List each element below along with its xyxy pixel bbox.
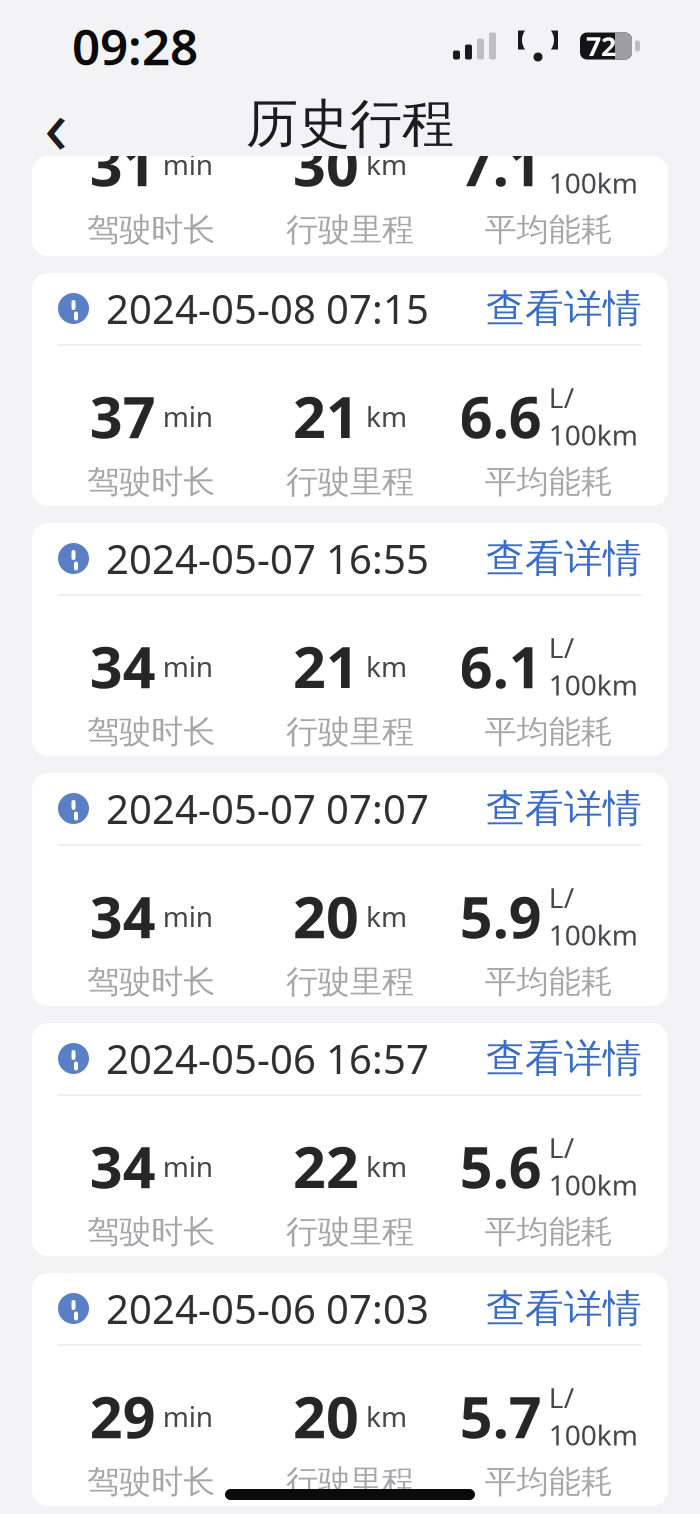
staticText: 行驶里程: [286, 962, 414, 1001]
staticText: min: [163, 897, 213, 935]
staticText: L/100km: [549, 1379, 638, 1453]
staticText: 34: [90, 878, 156, 954]
staticText: 30: [293, 126, 359, 202]
staticText: 2024-05-06 16:57: [106, 1032, 429, 1085]
staticText: 平均能耗: [485, 712, 613, 751]
staticText: 行驶里程: [286, 462, 414, 501]
staticText: L/100km: [549, 379, 638, 453]
staticText: 34: [90, 1128, 156, 1204]
staticText: 2024-05-07 07:07: [106, 782, 429, 835]
staticText: 6.6: [460, 378, 542, 454]
staticText: km: [366, 397, 407, 435]
staticText: 行驶里程: [286, 712, 414, 751]
staticText: 20: [293, 1378, 359, 1454]
staticText: min: [163, 1397, 213, 1435]
staticText: 查看详情: [486, 1035, 642, 1082]
button[interactable]: 2024-05-07 07:07: [0, 773, 700, 1006]
staticText: 72: [586, 28, 616, 64]
staticText: 29: [90, 1378, 156, 1454]
staticText: 2024-05-08 07:15: [106, 282, 429, 335]
staticText: 驾驶时长: [87, 210, 215, 249]
staticText: 5.7: [460, 1378, 542, 1454]
staticText: 2024-05-06 07:03: [106, 1282, 429, 1335]
staticText: 驾驶时长: [87, 462, 215, 501]
staticText: L/100km: [549, 127, 638, 201]
staticText: 平均能耗: [485, 1212, 613, 1251]
staticText: km: [366, 647, 407, 685]
staticText: km: [366, 1397, 407, 1435]
staticText: 37: [90, 378, 156, 454]
staticText: 行驶里程: [286, 1212, 414, 1251]
staticText: 20: [293, 878, 359, 954]
staticText: ‹: [44, 73, 68, 175]
staticText: 09:28: [72, 13, 198, 79]
staticText: 平均能耗: [485, 962, 613, 1001]
button[interactable]: 2024-05-06 07:03: [0, 1273, 700, 1506]
staticText: 驾驶时长: [87, 962, 215, 1001]
staticText: 22: [293, 1128, 359, 1204]
staticText: min: [163, 647, 213, 685]
staticText: min: [163, 145, 213, 183]
staticText: 历史行程: [246, 92, 454, 156]
staticText: km: [366, 897, 407, 935]
staticText: 查看详情: [486, 535, 642, 582]
staticText: 5.9: [460, 878, 542, 954]
staticText: min: [163, 1147, 213, 1185]
button[interactable]: 2024-05-08 07:15: [0, 273, 700, 506]
staticText: 5.6: [460, 1128, 542, 1204]
staticText: 驾驶时长: [87, 1212, 215, 1251]
staticText: 查看详情: [486, 285, 642, 332]
staticText: 平均能耗: [485, 462, 613, 501]
staticText: 行驶里程: [286, 1462, 414, 1501]
staticText: 平均能耗: [485, 210, 613, 249]
button[interactable]: Back: [14, 92, 98, 156]
staticText: min: [163, 397, 213, 435]
staticText: 查看详情: [486, 1285, 642, 1332]
staticText: L/100km: [549, 1129, 638, 1203]
staticText: L/100km: [549, 629, 638, 703]
button[interactable]: 2024-05-07 16:55: [0, 523, 700, 756]
staticText: 查看详情: [486, 785, 642, 832]
staticText: 2024-05-07 16:55: [106, 532, 429, 585]
staticText: 31: [90, 126, 156, 202]
staticText: km: [366, 145, 407, 183]
staticText: 21: [293, 628, 359, 704]
staticText: 行驶里程: [286, 210, 414, 249]
staticText: 21: [293, 378, 359, 454]
staticText: 34: [90, 628, 156, 704]
staticText: km: [366, 1147, 407, 1185]
staticText: 驾驶时长: [87, 1462, 215, 1501]
staticText: 驾驶时长: [87, 712, 215, 751]
staticText: 平均能耗: [485, 1462, 613, 1501]
staticText: L/100km: [549, 879, 638, 953]
staticText: 6.1: [460, 628, 542, 704]
button[interactable]: 2024-05-06 16:57: [0, 1023, 700, 1256]
staticText: 7.1: [460, 126, 542, 202]
